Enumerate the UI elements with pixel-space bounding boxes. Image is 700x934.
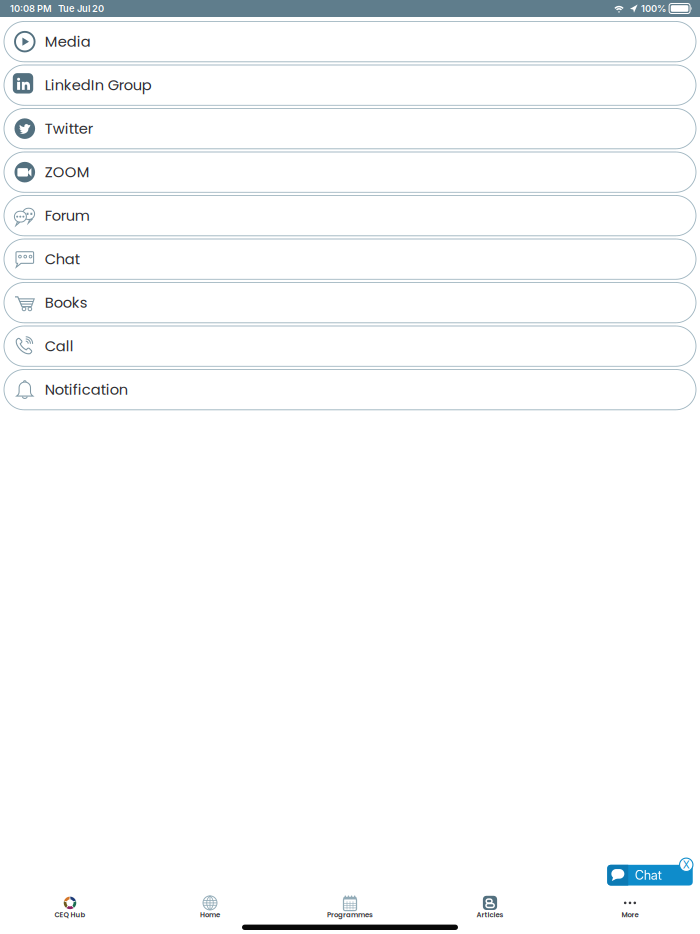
staticText: Articles	[476, 910, 503, 920]
staticText: More	[621, 910, 638, 920]
staticText: Twitter	[45, 118, 93, 139]
button[interactable]: Chat	[4, 239, 696, 279]
button[interactable]: Programmes	[280, 894, 420, 921]
button[interactable]: Twitter	[4, 108, 696, 149]
button[interactable]: LinkedIn Group	[4, 65, 696, 105]
staticText: Media	[45, 31, 91, 52]
staticText: Notification	[45, 379, 128, 400]
staticText: 100%	[641, 3, 666, 14]
button[interactable]: Books	[4, 282, 696, 323]
button[interactable]: Notification	[4, 369, 696, 410]
button[interactable]: Forum	[4, 195, 696, 236]
button[interactable]: More	[560, 894, 700, 921]
button[interactable]: Close chat	[679, 858, 693, 872]
button[interactable]: ZOOM	[4, 152, 696, 192]
button[interactable]: Home	[140, 894, 280, 921]
staticText: Home	[200, 910, 220, 920]
button[interactable]: Chat	[607, 865, 693, 885]
staticText: Chat	[635, 867, 662, 883]
staticText: ZOOM	[45, 162, 90, 182]
staticText: Programmes	[327, 910, 373, 920]
staticText: CEQ Hub	[54, 910, 85, 920]
staticText: Chat	[45, 249, 80, 269]
button[interactable]: Call	[4, 326, 696, 366]
staticText: LinkedIn Group	[45, 75, 152, 95]
staticText: 10:08 PM	[10, 3, 52, 14]
staticText: Books	[45, 292, 88, 313]
staticText: X	[683, 859, 690, 871]
button[interactable]: CEQ Hub	[0, 894, 140, 921]
staticText: Call	[45, 336, 74, 356]
staticText: Tue Jul 20	[58, 3, 104, 14]
staticText: Forum	[45, 205, 90, 226]
button[interactable]: Media	[4, 21, 696, 62]
button[interactable]: Articles	[420, 894, 560, 921]
